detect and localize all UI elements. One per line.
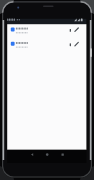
button[interactable] <box>74 27 81 33</box>
button[interactable] <box>57 151 67 160</box>
button[interactable] <box>42 151 52 160</box>
button[interactable] <box>74 41 81 47</box>
button[interactable] <box>7 40 86 54</box>
button[interactable] <box>27 151 37 160</box>
button[interactable] <box>68 41 73 47</box>
button[interactable] <box>68 27 73 33</box>
button[interactable] <box>7 25 86 39</box>
